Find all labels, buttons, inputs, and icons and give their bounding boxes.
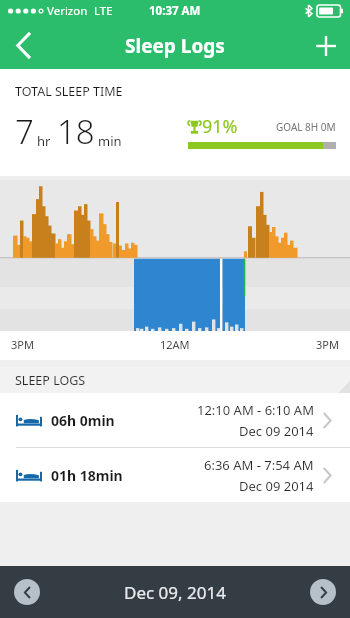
button[interactable]: 01h 18min — [0, 448, 350, 502]
button[interactable]: 06h 0min — [0, 393, 350, 447]
button[interactable]: Add sleep log — [302, 22, 350, 69]
staticText: 12:10 AM - 6:10 AM — [197, 401, 314, 419]
staticText: 10:37 AM — [149, 3, 201, 19]
staticText: Dec 09 2014 — [239, 477, 314, 495]
staticText: Verizon — [47, 3, 88, 19]
staticText: 3PM — [316, 337, 339, 352]
staticText: Sleep Logs — [125, 33, 225, 59]
button[interactable]: Next day — [310, 579, 336, 605]
staticText: 3PM — [11, 337, 34, 352]
staticText: 6:36 AM - 7:54 AM — [204, 456, 314, 474]
staticText: 12AM — [160, 337, 190, 352]
staticText: GOAL 8H 0M — [276, 120, 336, 134]
staticText: TOTAL SLEEP TIME — [15, 83, 123, 100]
staticText: 7 — [15, 109, 34, 154]
staticText: 06h 0min — [51, 411, 115, 430]
staticText: SLEEP LOGS — [15, 372, 86, 389]
staticText: Dec 09 2014 — [239, 422, 314, 440]
staticText: hr — [37, 132, 51, 150]
staticText: LTE — [94, 3, 113, 19]
button[interactable]: Previous day — [14, 579, 40, 605]
staticText: 01h 18min — [51, 466, 123, 485]
staticText: 91% — [202, 114, 238, 139]
button[interactable]: Back — [0, 22, 46, 69]
staticText: Dec 09, 2014 — [124, 581, 226, 604]
staticText: min — [98, 132, 122, 150]
staticText: 18 — [57, 109, 95, 154]
